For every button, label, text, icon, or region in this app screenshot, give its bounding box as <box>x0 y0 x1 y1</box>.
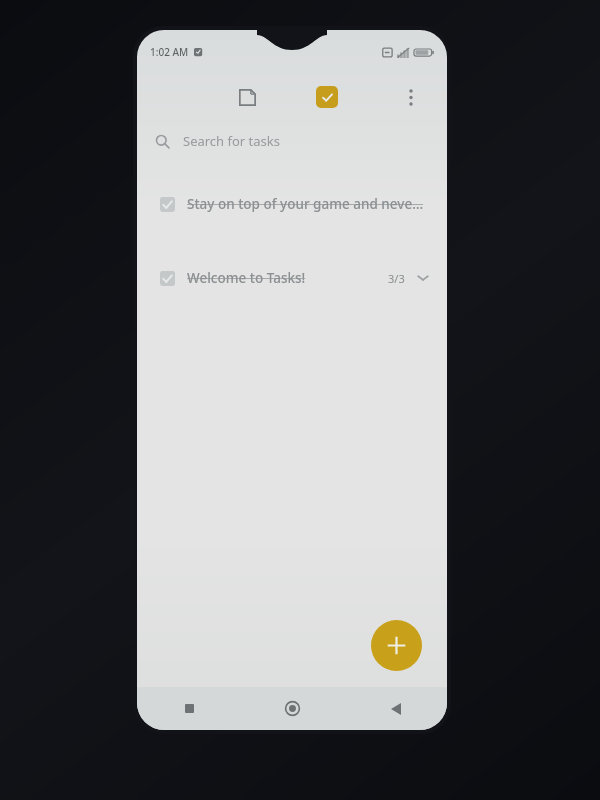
button[interactable]: Recents <box>137 687 241 730</box>
staticText: Search for tasks <box>183 132 280 150</box>
button[interactable]: Back <box>344 687 447 730</box>
button[interactable]: Completed <box>152 263 182 293</box>
button[interactable]: Search for tasks <box>137 122 447 160</box>
button[interactable]: Completed <box>152 189 182 219</box>
staticText: Welcome to Tasks! <box>187 269 388 287</box>
button[interactable]: Tasks <box>313 83 341 111</box>
staticText: Stay on top of your game and neve… <box>187 195 437 213</box>
button[interactable]: More options <box>395 81 427 113</box>
button[interactable]: Completed <box>137 256 447 300</box>
button[interactable]: Notes <box>233 83 261 111</box>
button[interactable]: Completed <box>137 182 447 226</box>
button[interactable]: Home <box>241 687 344 730</box>
button[interactable]: Add task <box>371 620 422 671</box>
staticText: 3/3 <box>388 271 405 286</box>
staticText: 1:02 AM <box>150 45 189 59</box>
button[interactable]: Expand <box>411 266 435 290</box>
